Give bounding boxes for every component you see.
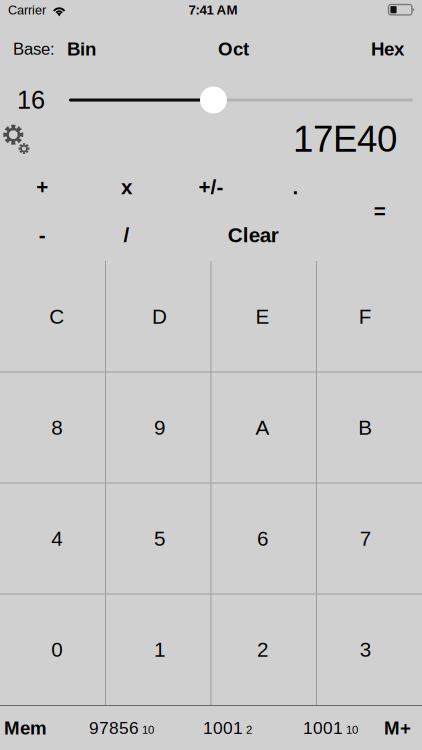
staticText: Oct [218,39,249,59]
staticText: C [49,305,64,328]
button[interactable]: 6 [211,483,314,594]
button[interactable]: 0 [5,594,108,705]
staticText: 1 [154,638,165,661]
button[interactable]: Clear [169,211,338,259]
staticText: A [255,416,269,439]
staticText: Bin [67,39,96,59]
staticText: 4 [51,527,62,550]
button[interactable]: 9 [108,372,211,483]
staticText: 10 [346,723,358,736]
staticText: B [358,416,372,439]
staticText: 16 [17,86,45,114]
staticText: 7:41 AM [188,3,237,17]
staticText: 10 [142,723,154,736]
staticText: x [121,175,132,199]
button[interactable]: 4 [5,483,108,594]
button[interactable]: Mem [4,706,47,750]
staticText: F [359,305,372,328]
staticText: - [39,223,46,247]
staticText: . [292,175,298,199]
button[interactable]: 7 [314,483,417,594]
staticText: E [255,305,269,328]
staticText: 2 [246,723,252,736]
staticText: Mem [4,718,47,738]
staticText: Base: [13,40,55,58]
staticText: + [36,175,48,199]
button[interactable]: Hex [371,39,404,59]
staticText: 97856 [89,718,139,738]
button[interactable]: 2 [211,594,314,705]
staticText: 7 [360,527,371,550]
button[interactable]: B [314,372,417,483]
button[interactable]: E [211,261,314,372]
button[interactable]: A [211,372,314,483]
staticText: 8 [51,416,62,439]
button[interactable]: F [314,261,417,372]
button[interactable]: Bin [67,39,96,59]
button[interactable]: 5 [108,483,211,594]
staticText: 3 [360,638,371,661]
button[interactable]: Settings [1,119,31,156]
button[interactable]: Oct [218,39,249,59]
button[interactable]: + [0,163,84,211]
staticText: 0 [51,638,62,661]
button[interactable]: 1 [108,594,211,705]
staticText: = [374,199,386,223]
staticText: 1001 [203,718,243,738]
button[interactable]: - [0,211,84,259]
button[interactable]: C [5,261,108,372]
staticText: M+ [384,718,411,738]
staticText: 1001 [303,718,343,738]
button[interactable]: x [84,163,169,211]
button[interactable]: M+ [384,706,411,750]
staticText: 17E40 [293,118,397,159]
staticText: 2 [257,638,268,661]
staticText: / [124,223,130,247]
staticText: 5 [154,527,165,550]
staticText: +/- [198,175,223,199]
button[interactable]: = [338,163,422,259]
staticText: 9 [154,416,165,439]
button[interactable]: 3 [314,594,417,705]
staticText: D [152,305,167,328]
staticText: 6 [257,527,268,550]
staticText: Hex [371,39,404,59]
button[interactable]: 8 [5,372,108,483]
button[interactable]: / [84,211,169,259]
staticText: Clear [228,223,279,247]
button[interactable]: +/- [169,163,253,211]
staticText: Carrier [8,3,46,17]
button[interactable]: . [253,163,338,211]
button[interactable]: D [108,261,211,372]
